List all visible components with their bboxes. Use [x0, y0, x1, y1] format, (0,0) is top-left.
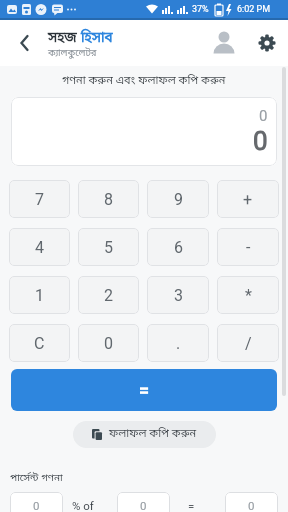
button[interactable]: = — [11, 369, 277, 411]
button[interactable]: C — [9, 324, 70, 362]
button[interactable]: 5 — [78, 228, 139, 266]
staticText: ক্যালকুলেটর — [48, 47, 97, 60]
staticText: 0 — [140, 499, 147, 512]
button[interactable]: ফলাফল কপি করুন — [73, 421, 216, 448]
staticText: = — [188, 499, 195, 512]
button[interactable]: 3 — [147, 276, 209, 314]
staticText: 0 — [259, 107, 268, 125]
button[interactable]: 1 — [9, 276, 70, 314]
staticText: 9 — [174, 190, 183, 209]
staticText: * — [245, 286, 252, 305]
staticText: . — [176, 334, 181, 353]
staticText: / — [245, 334, 252, 353]
staticText: = — [139, 380, 149, 401]
button[interactable]: 0 — [225, 492, 278, 512]
staticText: 6:02 PM — [237, 4, 271, 15]
button[interactable]: 7 — [9, 180, 70, 218]
staticText: 4 — [35, 238, 44, 257]
staticText: 3 — [174, 286, 183, 305]
button[interactable] — [202, 20, 246, 66]
staticText: 1 — [35, 286, 44, 305]
button[interactable]: + — [217, 180, 279, 218]
staticText: 8 — [104, 190, 113, 209]
staticText: 0 — [33, 499, 40, 512]
staticText: - — [246, 238, 251, 257]
staticText: 37% — [192, 4, 209, 15]
staticText: 0 — [248, 499, 255, 512]
staticText: হিসাব — [81, 30, 113, 48]
staticText: গণনা করুন এবং ফলাফল কপি করুন — [62, 74, 226, 89]
staticText: 6 — [174, 238, 183, 257]
button[interactable]: 8 — [78, 180, 139, 218]
staticText: C — [34, 334, 45, 353]
staticText: সহজ — [48, 30, 81, 48]
button[interactable]: 9 — [147, 180, 209, 218]
staticText: 0 — [253, 126, 268, 156]
staticText: পার্সেন্ট গণনা — [10, 472, 63, 485]
button[interactable]: 6 — [147, 228, 209, 266]
staticText: + — [243, 190, 253, 209]
staticText: 5 — [104, 238, 113, 257]
button[interactable]: * — [217, 276, 279, 314]
button[interactable]: 0 — [78, 324, 139, 362]
staticText: 7 — [35, 190, 44, 209]
button[interactable]: - — [217, 228, 279, 266]
button[interactable]: 2 — [78, 276, 139, 314]
button[interactable]: / — [217, 324, 279, 362]
button[interactable]: . — [147, 324, 209, 362]
button[interactable]: 0 — [10, 492, 63, 512]
button[interactable] — [246, 20, 288, 66]
button[interactable]: 4 — [9, 228, 70, 266]
staticText: ফলাফল কপি করুন — [109, 427, 197, 442]
staticText: 2 — [104, 286, 113, 305]
staticText: 0 — [104, 334, 113, 353]
staticText: % of — [72, 499, 94, 512]
button[interactable] — [0, 20, 40, 66]
button[interactable]: 0 — [117, 492, 170, 512]
